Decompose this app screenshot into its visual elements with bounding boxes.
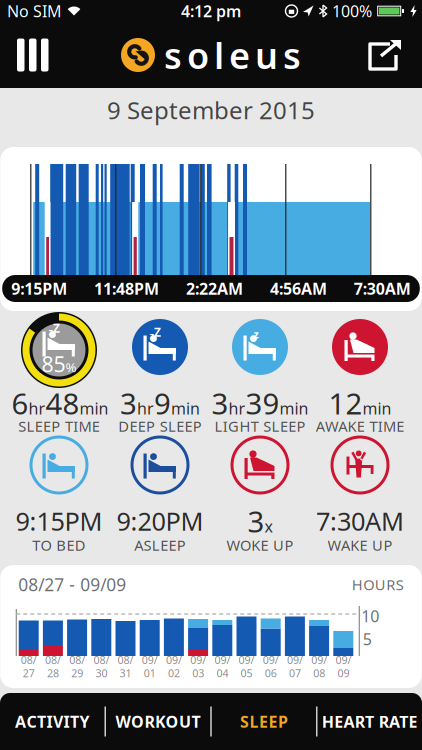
staticText: 04: [216, 666, 228, 680]
staticText: 30: [95, 666, 107, 680]
staticText: min: [362, 397, 391, 419]
button[interactable]: Share: [368, 31, 422, 79]
staticText: 48: [45, 383, 79, 422]
staticText: WOKE UP: [227, 535, 293, 555]
staticText: ACTIVITY: [15, 711, 90, 732]
staticText: 09/: [311, 653, 327, 667]
staticText: 01: [144, 666, 156, 680]
staticText: HEART RATE: [322, 711, 418, 732]
staticText: 09/: [190, 653, 206, 667]
staticText: WAKE UP: [328, 535, 392, 555]
staticText: hr: [228, 397, 245, 419]
staticText: 10: [361, 605, 379, 627]
staticText: hr: [28, 397, 45, 419]
staticText: 9:20PM: [116, 504, 203, 538]
staticText: 100%: [332, 0, 372, 22]
staticText: 08/: [45, 653, 61, 667]
staticText: z: [149, 329, 154, 342]
staticText: 03: [192, 666, 204, 680]
staticText: 4:56AM: [270, 278, 327, 299]
staticText: 6: [11, 383, 28, 422]
staticText: 85: [41, 350, 65, 378]
staticText: 3: [247, 501, 264, 540]
staticText: 09/: [263, 653, 279, 667]
staticText: z: [253, 327, 258, 341]
button[interactable]: HEART RATE: [317, 693, 422, 750]
staticText: HOURS: [352, 575, 404, 594]
staticText: No SIM: [7, 0, 62, 22]
staticText: 3: [120, 383, 137, 422]
staticText: 7:30AM: [316, 504, 404, 538]
staticText: SLEEP: [240, 711, 288, 732]
staticText: 09/: [239, 653, 255, 667]
staticText: 09/: [214, 653, 230, 667]
staticText: z: [48, 325, 53, 338]
staticText: 08/: [118, 653, 134, 667]
staticText: 9:15PM: [15, 504, 102, 538]
staticText: min: [79, 397, 108, 419]
staticText: 09: [337, 666, 349, 680]
staticText: 12: [328, 383, 362, 422]
staticText: 9:15PM: [11, 278, 67, 299]
button[interactable]: Menu: [0, 30, 48, 79]
staticText: 9 September 2015: [107, 94, 315, 126]
button[interactable]: WORKOUT: [106, 693, 210, 750]
staticText: WORKOUT: [116, 711, 201, 732]
button[interactable]: SLEEP: [212, 693, 316, 750]
staticText: LIGHT SLEEP: [214, 416, 305, 436]
staticText: 06: [265, 666, 277, 680]
staticText: ASLEEP: [134, 535, 186, 555]
staticText: DEEP SLEEP: [118, 416, 202, 436]
staticText: 28: [47, 666, 59, 680]
staticText: 08/: [69, 653, 85, 667]
staticText: 2:22AM: [186, 278, 243, 299]
staticText: soleus: [164, 31, 301, 79]
staticText: 05: [241, 666, 253, 680]
staticText: min: [279, 397, 308, 419]
staticText: Z: [53, 320, 60, 336]
staticText: TO BED: [32, 535, 86, 555]
button[interactable]: ACTIVITY: [0, 693, 105, 750]
staticText: 08/: [21, 653, 37, 667]
staticText: 7:30AM: [354, 278, 411, 299]
staticText: 08/27 - 09/09: [18, 573, 126, 596]
staticText: 02: [168, 666, 180, 680]
staticText: %: [65, 358, 76, 376]
staticText: x: [264, 515, 272, 537]
staticText: 09/: [142, 653, 158, 667]
staticText: 08/: [93, 653, 109, 667]
staticText: 9: [154, 383, 171, 422]
staticText: hr: [137, 397, 154, 419]
staticText: 5: [363, 628, 372, 650]
staticText: 09/: [166, 653, 182, 667]
staticText: 08: [313, 666, 325, 680]
staticText: SLEEP TIME: [18, 416, 100, 436]
staticText: 11:48PM: [94, 278, 159, 299]
staticText: min: [171, 397, 200, 419]
staticText: 29: [71, 666, 83, 680]
staticText: AWAKE TIME: [316, 416, 404, 436]
staticText: 4:12 pm: [181, 0, 241, 22]
staticText: 3: [211, 383, 228, 422]
staticText: 39: [245, 383, 279, 422]
staticText: 27: [23, 666, 35, 680]
staticText: 09/: [335, 653, 351, 667]
staticText: Z: [154, 324, 161, 340]
staticText: 09/: [287, 653, 303, 667]
staticText: 07: [289, 666, 301, 680]
staticText: 31: [120, 666, 132, 680]
